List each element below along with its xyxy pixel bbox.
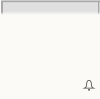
- button[interactable]: Notifications: [82, 78, 96, 93]
